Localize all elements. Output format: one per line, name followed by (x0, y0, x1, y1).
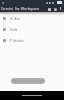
button[interactable]: More options (58, 6, 63, 11)
button[interactable]: Subscribe to continue (11, 78, 45, 84)
staticText: Subscribe to continue (13, 79, 44, 83)
button[interactable]: P Archive (0, 35, 64, 46)
button[interactable]: Hi Ana (0, 13, 64, 24)
staticText: Hi Ana (10, 17, 21, 21)
staticText: Draft (10, 28, 18, 32)
button[interactable]: Search (52, 6, 58, 12)
staticText: P Archive (10, 39, 24, 43)
button[interactable]: Edit (46, 6, 52, 12)
staticText: Gemini for Workspace (1, 6, 40, 11)
button[interactable]: Draft (0, 24, 64, 35)
